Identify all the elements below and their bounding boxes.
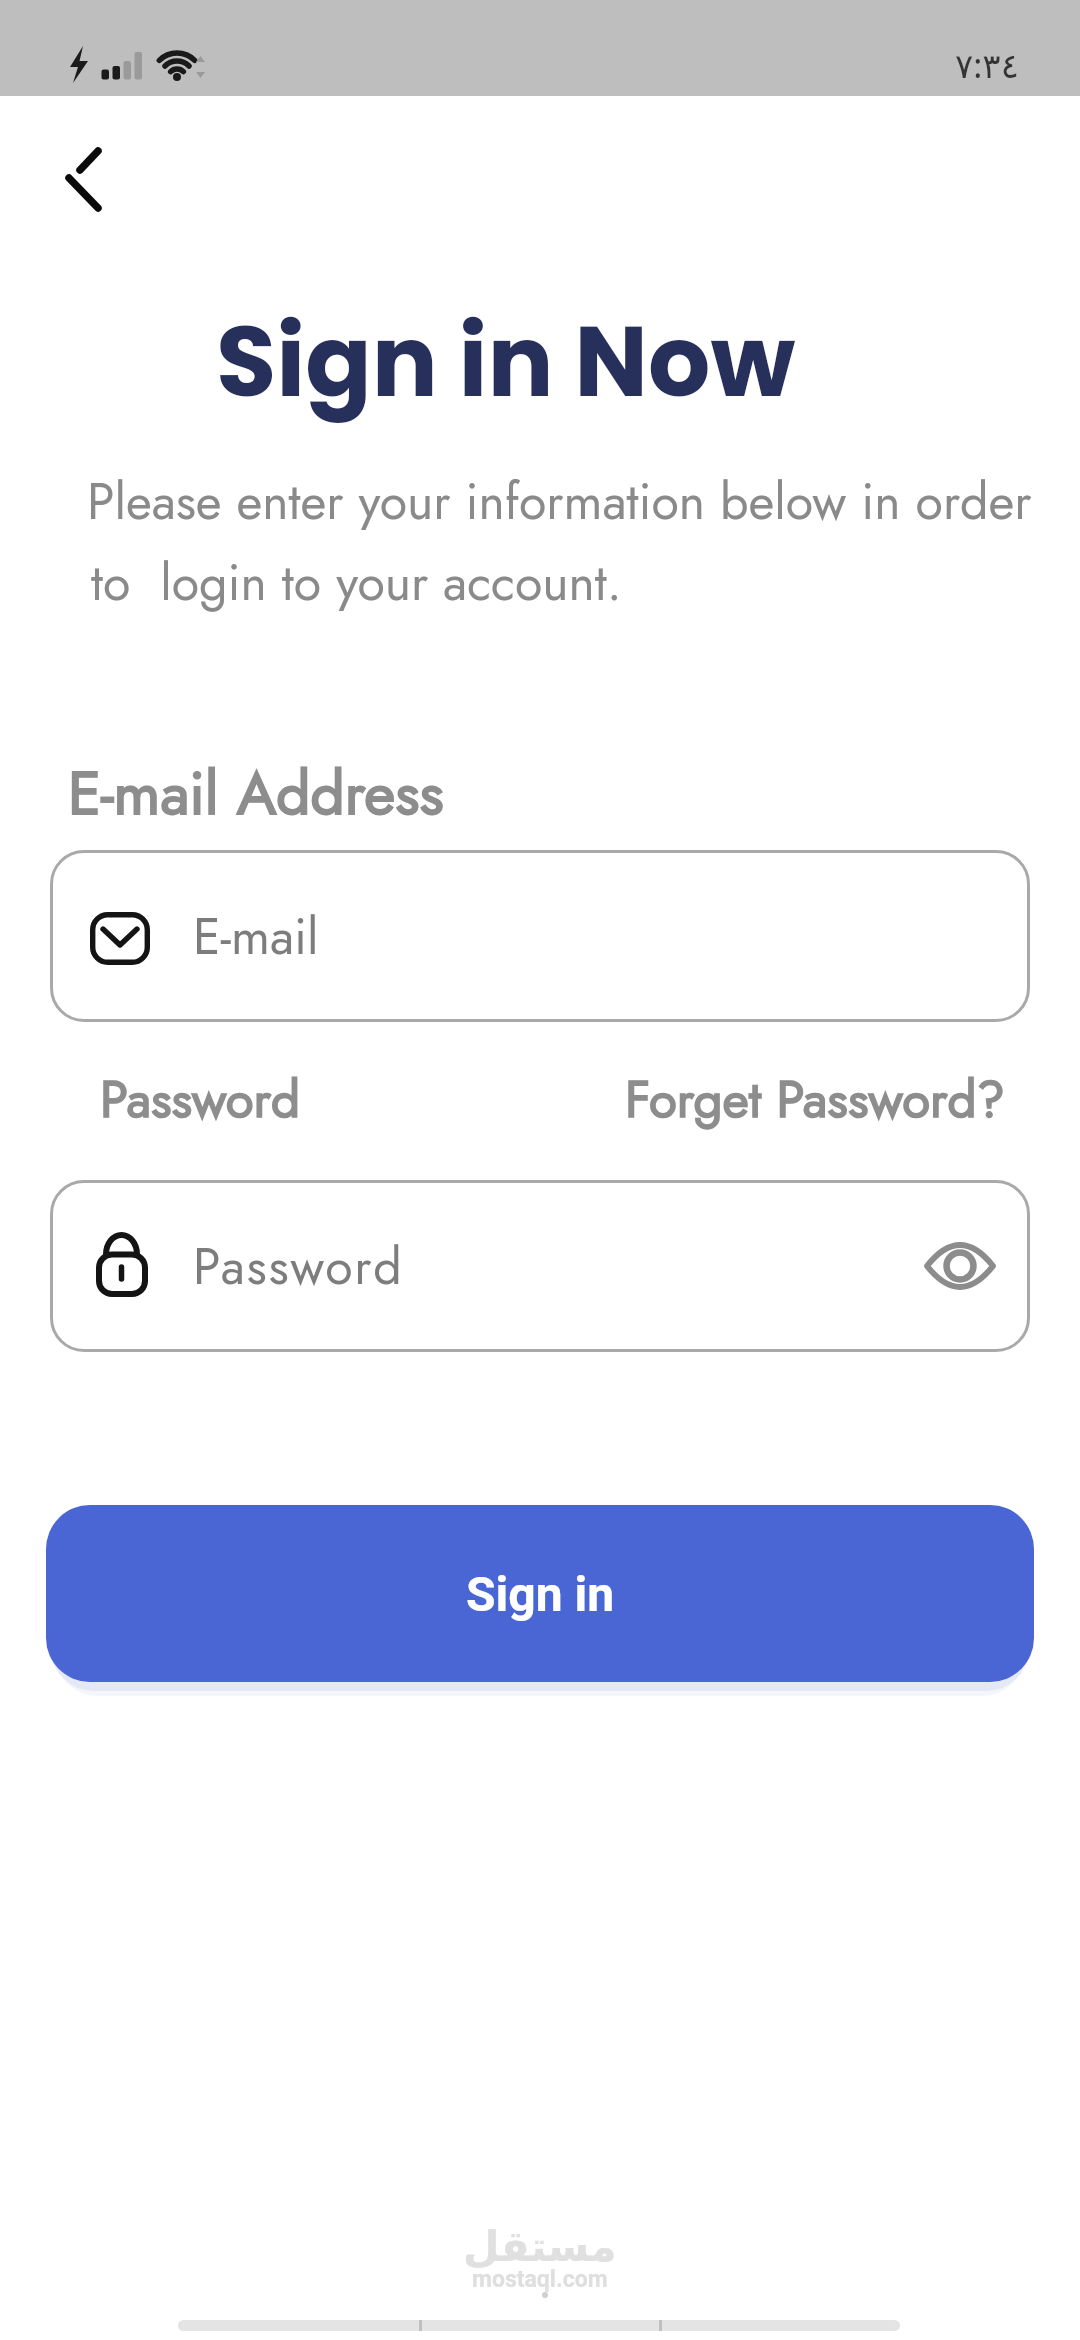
button[interactable]: Forget Password?	[625, 1062, 1005, 1136]
button[interactable]	[55, 138, 115, 218]
button[interactable]: E-mail	[50, 850, 1030, 1022]
staticText: Sign in Now	[216, 293, 796, 430]
staticText: mostaql.com	[472, 2266, 608, 2293]
staticText: Password	[193, 1230, 404, 1302]
button[interactable]: Password	[50, 1180, 1030, 1352]
staticText: ٧:٣٤	[955, 42, 1019, 88]
staticText: Password	[100, 1062, 301, 1136]
staticText: مستقل	[463, 2222, 617, 2271]
staticText: E-mail Address	[68, 750, 444, 837]
staticText: to login to your account.	[91, 546, 622, 618]
button[interactable]	[925, 1233, 995, 1299]
button[interactable]: Sign in	[46, 1505, 1034, 1682]
staticText: Please enter your information below in o…	[87, 465, 1032, 537]
staticText: E-mail	[193, 900, 319, 972]
staticText: Sign in	[466, 1566, 615, 1622]
